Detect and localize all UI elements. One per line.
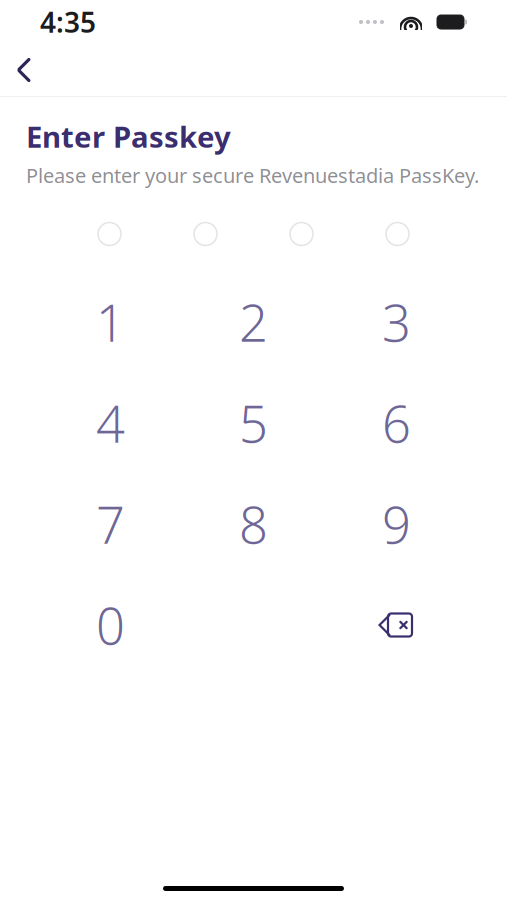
button[interactable]: Delete (325, 574, 468, 675)
button[interactable]: Back (2, 48, 46, 92)
staticText: 4 (96, 389, 125, 457)
staticText: Please enter your secure Revenuestadia P… (26, 162, 479, 189)
button[interactable]: 8 (182, 473, 325, 574)
staticText: 6 (382, 389, 411, 457)
button[interactable]: 1 (39, 271, 182, 372)
staticText: 4:35 (40, 3, 96, 41)
button[interactable]: 6 (325, 372, 468, 473)
staticText: 2 (239, 288, 268, 356)
staticText: 5 (239, 389, 268, 457)
staticText: 0 (96, 591, 125, 659)
staticText: 7 (96, 490, 125, 558)
button[interactable]: 7 (39, 473, 182, 574)
button[interactable]: 5 (182, 372, 325, 473)
button[interactable]: 3 (325, 271, 468, 372)
staticText: 8 (239, 490, 268, 558)
button[interactable]: 4 (39, 372, 182, 473)
staticText: Enter Passkey (26, 117, 231, 156)
button[interactable]: 2 (182, 271, 325, 372)
staticText: 3 (382, 288, 411, 356)
button[interactable]: 0 (39, 574, 182, 675)
button[interactable]: 9 (325, 473, 468, 574)
staticText: 9 (382, 490, 411, 558)
staticText: 1 (96, 288, 125, 356)
